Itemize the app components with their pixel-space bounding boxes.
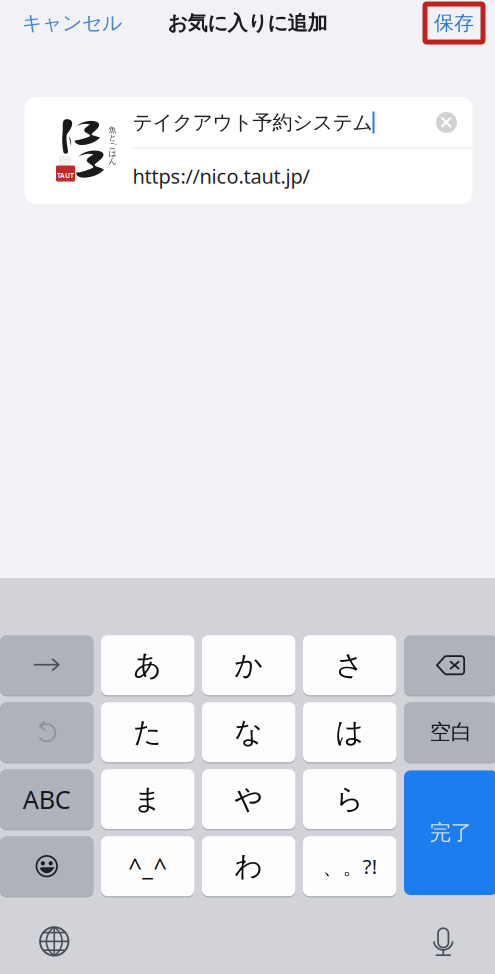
staticText: ABC — [23, 782, 71, 816]
button[interactable]: Undo — [0, 701, 93, 763]
button[interactable]: 保存 — [428, 7, 495, 39]
button[interactable]: Delete — [404, 634, 495, 696]
button[interactable]: 、。?! — [303, 835, 396, 897]
staticText: https://nico.taut.jp/ — [132, 163, 309, 189]
staticText: は — [335, 715, 364, 749]
button[interactable]: な — [202, 701, 295, 763]
button[interactable]: あ — [101, 634, 194, 696]
button[interactable]: 完了 — [404, 769, 495, 896]
button[interactable]: さ — [303, 634, 396, 696]
button[interactable]: 空白 — [404, 701, 495, 763]
staticText: と — [108, 133, 116, 143]
staticText: な — [234, 715, 263, 749]
button[interactable]: Next candidate — [0, 634, 93, 696]
staticText: お気に入りに追加 — [167, 11, 327, 35]
staticText: ま — [133, 782, 162, 816]
staticText: わ — [234, 849, 263, 883]
button[interactable]: Clear text — [434, 110, 458, 134]
staticText: ん — [108, 156, 116, 166]
staticText: か — [234, 648, 263, 682]
staticText: や — [234, 782, 263, 816]
staticText: テイクアウト予約システム — [132, 110, 372, 135]
staticText: 完了 — [430, 820, 472, 846]
staticText: TAUT — [57, 171, 74, 180]
staticText: ご — [108, 141, 116, 150]
button[interactable]: Emoji — [0, 835, 93, 897]
staticText: 保存 — [434, 11, 474, 35]
button[interactable]: た — [101, 701, 194, 763]
staticText: は — [108, 148, 116, 158]
staticText: た — [133, 715, 162, 749]
button[interactable]: や — [202, 768, 295, 830]
button[interactable]: ま — [101, 768, 194, 830]
staticText: 空白 — [430, 719, 472, 745]
staticText: あ — [133, 648, 162, 682]
staticText: ら — [335, 782, 364, 816]
button[interactable]: ABC — [0, 768, 93, 830]
button[interactable]: Dictation — [390, 918, 495, 964]
button[interactable]: キャンセル — [0, 1, 144, 45]
button[interactable]: ら — [303, 768, 396, 830]
staticText: 、。?! — [323, 853, 377, 880]
button[interactable]: は — [303, 701, 396, 763]
staticText: 魚 — [108, 125, 116, 135]
button[interactable]: Change keyboard — [1, 918, 107, 964]
button[interactable]: ^_^ — [101, 835, 194, 897]
button[interactable]: か — [202, 634, 295, 696]
staticText: キャンセル — [22, 11, 122, 35]
button[interactable]: わ — [202, 835, 295, 897]
staticText: ^_^ — [128, 850, 167, 882]
staticText: さ — [335, 648, 364, 682]
